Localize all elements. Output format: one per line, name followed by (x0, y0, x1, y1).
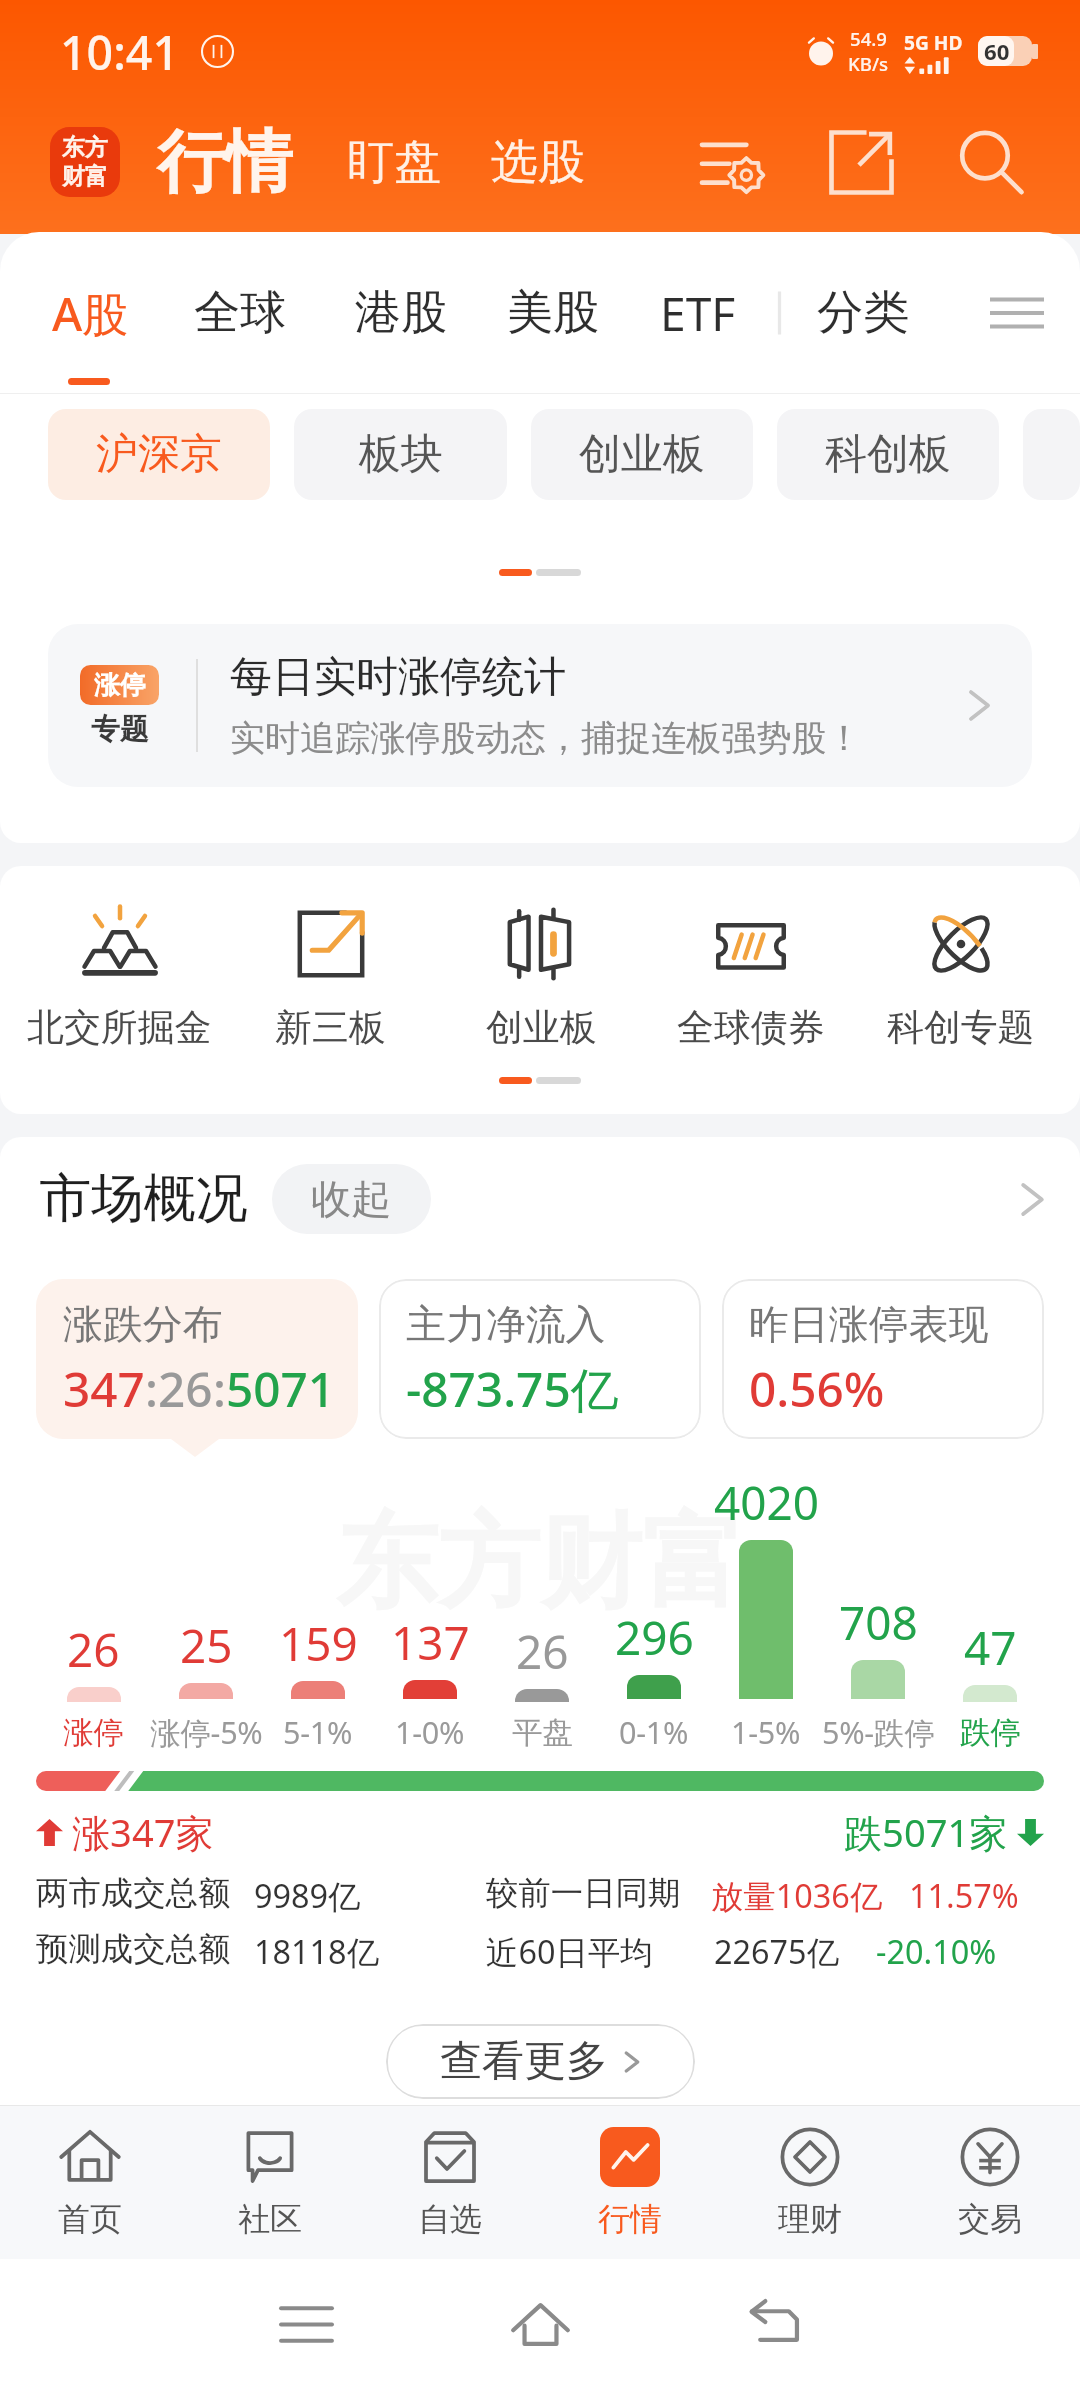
staticText: 1-0% (395, 1711, 465, 1753)
staticText: 10:41 (60, 20, 180, 83)
button[interactable]: 涨停 (48, 624, 1032, 787)
staticText: 选股 (491, 133, 586, 192)
staticText: 盯盘 (347, 133, 442, 192)
staticText: 首页 (58, 2199, 123, 2239)
staticText: 专题 (91, 711, 149, 747)
button[interactable]: 社区 (180, 2106, 360, 2259)
staticText: 两市成交总额 (36, 1873, 231, 1914)
staticText: 4020 (714, 1471, 819, 1534)
staticText: 市场概况 (39, 1166, 248, 1232)
staticText: 交易 (958, 2199, 1023, 2239)
button[interactable]: 理财 (720, 2106, 900, 2259)
button[interactable]: 主力净流入 (379, 1279, 701, 1439)
button[interactable]: 板块 (294, 409, 507, 500)
staticText: 1-5% (731, 1711, 801, 1753)
staticText: 137 (391, 1611, 470, 1674)
button[interactable]: 返回 (720, 2270, 828, 2378)
staticText: 较前一日同期 (486, 1873, 681, 1914)
staticText: 沪深京 (96, 428, 222, 481)
staticText: 预测成交总额 (36, 1929, 231, 1970)
button[interactable]: 查看更多 (386, 2024, 695, 2099)
staticText: 5%-跌停 (822, 1711, 934, 1753)
button[interactable]: 行情 (540, 2106, 720, 2259)
button[interactable]: 搜索 (948, 120, 1032, 204)
button[interactable]: A股 (52, 282, 129, 345)
staticText: 26 (516, 1620, 569, 1683)
staticText: 5-1% (283, 1711, 353, 1753)
button[interactable]: 市场概况 (39, 1164, 1047, 1234)
staticText: : (213, 1356, 226, 1421)
staticText: 北交所掘金 (27, 1004, 212, 1050)
staticText: 昨日涨停表现 (749, 1300, 989, 1350)
staticText: -873.75亿 (406, 1356, 619, 1421)
staticText: 板块 (359, 428, 443, 481)
staticText: 全球债券 (677, 1004, 825, 1050)
staticText: 159 (279, 1612, 358, 1675)
staticText: A股 (52, 282, 129, 345)
button[interactable]: 主页 (486, 2270, 594, 2378)
button[interactable]: 全球 (194, 284, 287, 342)
staticText: 实时追踪涨停股动态，捕捉连板强势股！ (230, 716, 862, 760)
button[interactable]: 设置 (693, 123, 771, 201)
button[interactable]: 科创专题 (856, 905, 1066, 1050)
staticText: 科创专题 (887, 1004, 1035, 1050)
staticText: ETF (660, 282, 736, 345)
button[interactable]: 创业板 (531, 409, 753, 500)
staticText: 收起 (311, 1174, 392, 1225)
button[interactable]: 港股 (355, 284, 448, 342)
button[interactable]: 科创板 (777, 409, 999, 500)
staticText: 25 (180, 1614, 233, 1677)
button[interactable]: 交易 (900, 2106, 1080, 2259)
button[interactable]: 涨跌分布 (36, 1279, 358, 1439)
staticText: KB/s (848, 51, 889, 76)
staticText: 东方 (62, 133, 108, 162)
staticText: 54.9 (850, 26, 887, 51)
button[interactable]: 创业板 (436, 905, 646, 1050)
staticText: 708 (839, 1591, 918, 1654)
button[interactable]: 更多分类 (981, 277, 1053, 349)
button[interactable]: 分类 (817, 284, 910, 342)
staticText: -20.10% (876, 1929, 997, 1973)
staticText: 科创板 (825, 428, 951, 481)
button[interactable]: 美股 (507, 284, 600, 342)
button[interactable]: 昨日涨停表现 (722, 1279, 1044, 1439)
staticText: 财富 (62, 162, 108, 191)
staticText: : (145, 1356, 158, 1421)
staticText: 22675亿 (714, 1929, 840, 1973)
staticText: 新三板 (275, 1004, 386, 1050)
button[interactable]: 最近任务 (252, 2270, 360, 2378)
staticText: 每日实时涨停统计 (230, 651, 566, 704)
staticText: 9989亿 (254, 1873, 361, 1917)
button[interactable]: 全球债券 (646, 905, 856, 1050)
staticText: 47 (964, 1616, 1017, 1679)
staticText: 港股 (355, 284, 448, 342)
staticText: 全球 (194, 284, 287, 342)
staticText: 分类 (817, 284, 910, 342)
button[interactable]: 新三板 (225, 905, 436, 1050)
staticText: 理财 (778, 2199, 843, 2239)
staticText: 5G HD (904, 29, 963, 55)
staticText: 创业板 (579, 428, 705, 481)
button[interactable]: 北交所掘金 (14, 905, 225, 1050)
staticText: 放量1036亿 (711, 1873, 883, 1917)
staticText: 美股 (507, 284, 600, 342)
staticText: 行情 (598, 2199, 663, 2239)
staticText: 自选 (418, 2199, 483, 2239)
staticText: 东方财富 (336, 1499, 744, 1627)
staticText: 296 (615, 1606, 694, 1669)
staticText: 26 (67, 1618, 120, 1681)
button[interactable]: 分享 (822, 123, 900, 201)
button[interactable]: 沪深京 (48, 409, 270, 500)
button[interactable]: 首页 (0, 2106, 180, 2259)
button[interactable]: ETF (660, 282, 736, 345)
staticText: 跌停 (960, 1714, 1021, 1753)
staticText: 创业板 (486, 1004, 597, 1050)
staticText: 347 (63, 1356, 145, 1421)
staticText: 涨停 (63, 1714, 124, 1753)
staticText: 平盘 (512, 1714, 573, 1753)
staticText: 行情 (157, 120, 293, 205)
staticText: 涨347家 (72, 1806, 214, 1858)
staticText: 查看更多 (440, 2035, 608, 2088)
button[interactable]: 自选 (360, 2106, 540, 2259)
